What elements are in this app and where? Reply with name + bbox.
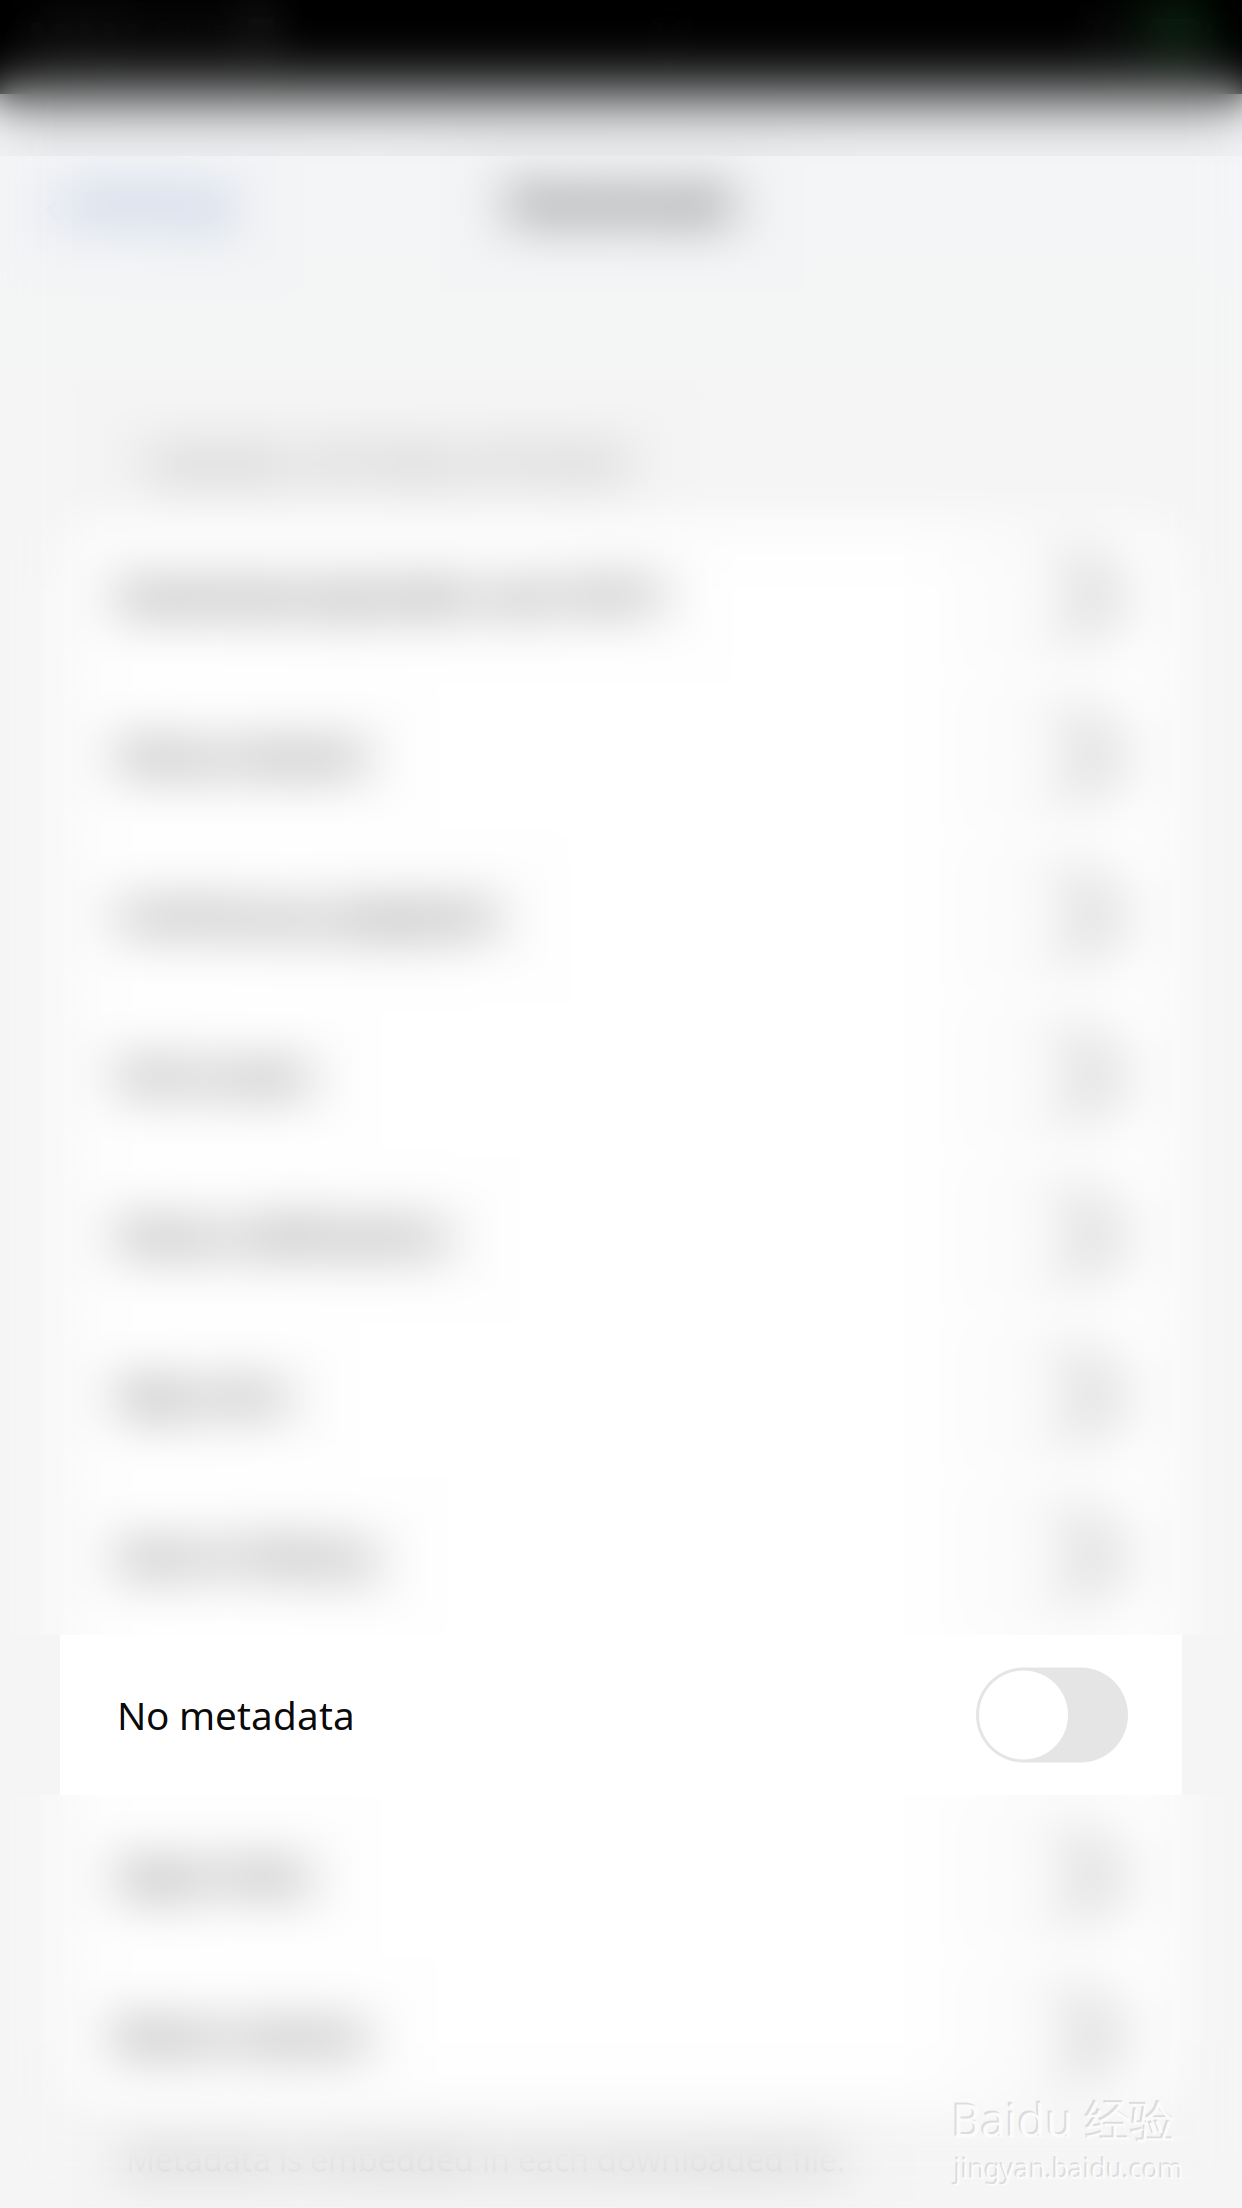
button[interactable]: ‹ [0,159,257,245]
staticText: jingyan.baidu.com [953,2149,1182,2185]
staticText: Baidu 经验 [950,2088,1174,2148]
staticText: Boost volume [117,2009,366,2061]
button[interactable]: Open links [60,1795,1182,1955]
button[interactable]: Save to library [60,1475,1182,1635]
staticText: Downloads [509,175,732,229]
staticText: No metadata [117,1689,355,1741]
staticText: Skip intro [117,1369,289,1421]
button[interactable]: Show notifications [60,1155,1182,1315]
staticText: Continuous playback [117,889,498,941]
button[interactable]: No metadata [60,1635,1182,1795]
staticText: Full screen [117,1049,312,1101]
staticText: Show artwork [117,729,367,781]
staticText: jingyan.baidu.com [955,2151,1184,2187]
button[interactable]: Download episodes over Wi-Fi [60,515,1182,675]
button[interactable]: Show artwork [60,675,1182,835]
button[interactable]: Boost volume [60,1955,1182,2115]
staticText: Open links [117,1849,311,1901]
staticText: Baidu 经验 [952,2090,1176,2150]
staticText: 100% [1070,13,1133,47]
button[interactable]: Skip intro [60,1315,1182,1475]
button[interactable]: Full screen [60,995,1182,1155]
staticText: Save to library [117,1529,376,1581]
staticText: Download episodes over Wi-Fi [117,569,663,621]
staticText: Show notifications [117,1209,450,1261]
staticText: 9:41 [647,13,696,47]
button[interactable]: Continuous playback [60,835,1182,995]
staticText: Carrier [155,13,236,47]
